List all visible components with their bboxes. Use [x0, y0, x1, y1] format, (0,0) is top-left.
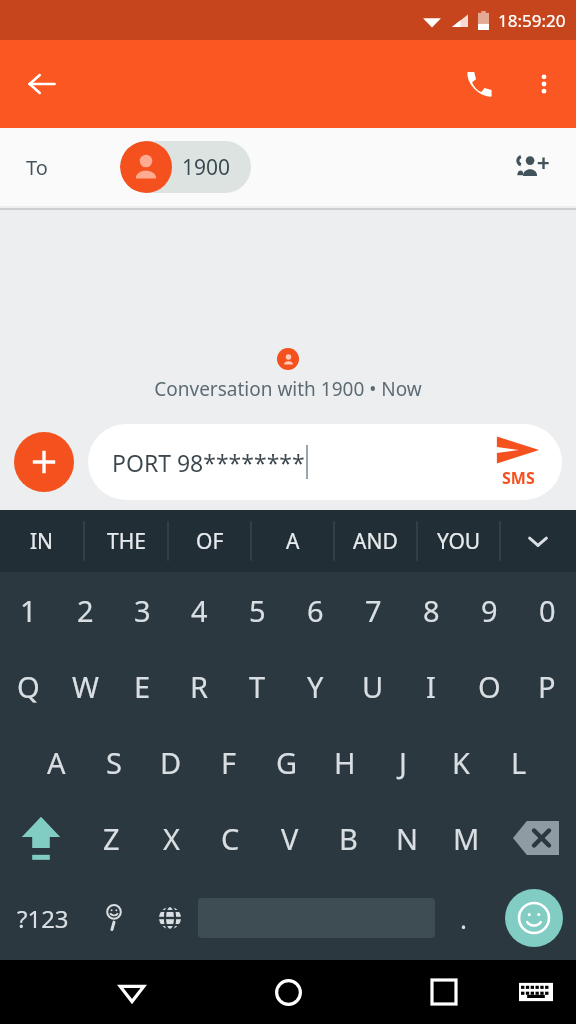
staticText: F — [221, 743, 237, 782]
button[interactable]: Comma and emoji — [86, 876, 142, 960]
button[interactable]: YOU — [417, 510, 500, 572]
staticText: 9 — [481, 591, 498, 630]
staticText: 5 — [249, 591, 266, 630]
button[interactable]: S — [85, 724, 142, 800]
staticText: V — [281, 819, 299, 858]
button[interactable]: Backspace — [496, 800, 576, 876]
staticText: Y — [307, 667, 324, 706]
button[interactable]: AND — [334, 510, 417, 572]
button[interactable]: Recents — [416, 964, 472, 1020]
staticText: A — [47, 743, 66, 782]
staticText: Q — [17, 667, 40, 706]
button[interactable]: 9 — [460, 572, 518, 648]
button[interactable]: P — [518, 648, 576, 724]
button[interactable]: Back — [14, 56, 70, 112]
button[interactable]: Change language — [142, 876, 198, 960]
button[interactable]: OF — [168, 510, 251, 572]
button[interactable]: Emoji — [491, 876, 576, 960]
button[interactable]: H — [316, 724, 374, 800]
button[interactable]: B — [319, 800, 378, 876]
staticText: K — [452, 743, 470, 782]
button[interactable]: A — [251, 510, 334, 572]
button[interactable]: 0 — [518, 572, 576, 648]
button[interactable]: E — [114, 648, 171, 724]
staticText: ?123 — [17, 902, 69, 935]
button[interactable]: 4 — [171, 572, 228, 648]
button[interactable]: J — [374, 724, 432, 800]
button[interactable]: I — [402, 648, 460, 724]
staticText: P — [538, 667, 556, 706]
button[interactable]: O — [460, 648, 518, 724]
button[interactable]: 1900 — [120, 141, 251, 193]
staticText: O — [478, 667, 501, 706]
staticText: W — [72, 667, 99, 706]
button[interactable]: Back — [104, 964, 160, 1020]
button[interactable]: IN — [0, 510, 84, 572]
staticText: YOU — [437, 527, 481, 556]
staticText: PORT 98******** — [112, 447, 305, 478]
button[interactable]: Add attachment — [14, 432, 74, 492]
staticText: SMS — [502, 467, 535, 489]
staticText: THE — [107, 527, 146, 556]
staticText: Conversation with 1900 • Now — [154, 376, 422, 402]
button[interactable]: C — [201, 800, 260, 876]
button[interactable]: Home — [260, 964, 316, 1020]
button[interactable]: ?123 — [0, 876, 86, 960]
button[interactable]: Q — [0, 648, 57, 724]
button[interactable]: G — [258, 724, 316, 800]
button[interactable]: F — [200, 724, 258, 800]
staticText: C — [221, 819, 240, 858]
button[interactable]: Shift — [0, 800, 81, 876]
staticText: Z — [103, 819, 120, 858]
button[interactable]: 7 — [344, 572, 402, 648]
staticText: D — [160, 743, 182, 782]
staticText: E — [134, 667, 151, 706]
button[interactable]: V — [260, 800, 319, 876]
staticText: L — [511, 743, 527, 782]
button[interactable]: N — [378, 800, 437, 876]
button[interactable]: Add people — [506, 141, 558, 193]
button[interactable]: 5 — [228, 572, 286, 648]
staticText: G — [276, 743, 298, 782]
staticText: 1900 — [182, 153, 231, 182]
button[interactable]: D — [142, 724, 200, 800]
button[interactable]: . — [435, 876, 491, 960]
button[interactable]: A — [28, 724, 85, 800]
button[interactable]: M — [437, 800, 496, 876]
button[interactable]: X — [141, 800, 201, 876]
button[interactable]: 2 — [57, 572, 114, 648]
staticText: 6 — [307, 591, 324, 630]
button[interactable]: THE — [84, 510, 168, 572]
staticText: . — [460, 901, 467, 936]
staticText: 7 — [365, 591, 382, 630]
staticText: 18:59:20 — [498, 9, 566, 32]
button[interactable]: PORT 98******** — [88, 424, 562, 500]
staticText: 8 — [423, 591, 440, 630]
button[interactable]: T — [228, 648, 286, 724]
button[interactable]: R — [171, 648, 228, 724]
button[interactable]: Z — [81, 800, 141, 876]
staticText: N — [396, 819, 419, 858]
staticText: B — [339, 819, 358, 858]
button[interactable]: L — [490, 724, 548, 800]
staticText: 1 — [20, 591, 37, 630]
staticText: AND — [353, 527, 398, 556]
button[interactable]: Hide suggestions — [500, 510, 576, 572]
button[interactable]: K — [432, 724, 490, 800]
staticText: U — [362, 667, 384, 706]
button[interactable]: Call — [452, 57, 506, 111]
button[interactable]: Switch keyboard — [512, 968, 560, 1016]
button[interactable]: W — [57, 648, 114, 724]
button[interactable]: 6 — [286, 572, 344, 648]
button[interactable]: More options — [520, 60, 568, 108]
staticText: T — [249, 667, 266, 706]
button[interactable]: 8 — [402, 572, 460, 648]
staticText: 0 — [539, 591, 556, 630]
button[interactable]: 3 — [114, 572, 171, 648]
button[interactable]: Y — [286, 648, 344, 724]
button[interactable]: Send SMS — [496, 435, 540, 489]
button[interactable]: U — [344, 648, 402, 724]
staticText: 4 — [191, 591, 208, 630]
button[interactable]: 1 — [0, 572, 57, 648]
